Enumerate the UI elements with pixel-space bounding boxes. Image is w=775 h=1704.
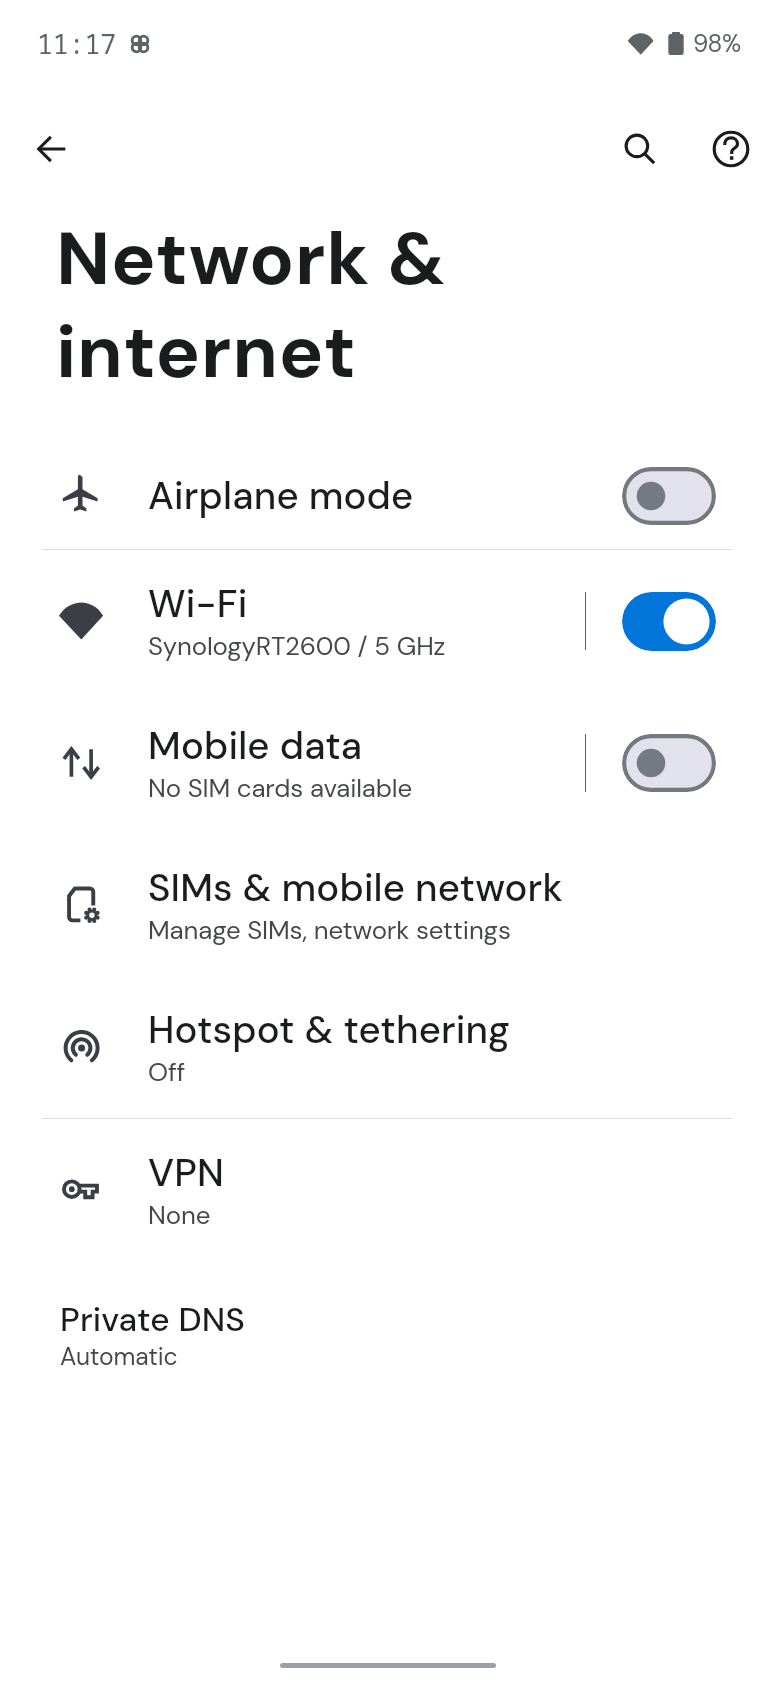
staticText: SynologyRT2600 / 5 GHz [148, 629, 446, 663]
button[interactable]: Hotspot & tethering [0, 976, 775, 1118]
button[interactable]: Search [597, 101, 683, 197]
button[interactable]: Wi-Fi [0, 550, 775, 692]
staticText: No SIM cards available [148, 771, 412, 805]
staticText: Airplane mode [148, 471, 414, 521]
staticText: Wi-Fi [148, 579, 248, 629]
staticText: Network & internet [56, 213, 447, 399]
button[interactable]: Private DNS [0, 1261, 775, 1409]
staticText: SIMs & mobile network [148, 863, 563, 913]
staticText: Off [148, 1055, 186, 1089]
button[interactable]: Help [683, 101, 775, 197]
staticText: VPN [148, 1148, 225, 1198]
staticText: None [148, 1198, 211, 1232]
staticText: Mobile data [148, 721, 363, 771]
staticText: 11:17 [37, 26, 117, 62]
staticText: Private DNS [60, 1298, 246, 1341]
staticText: Automatic [60, 1341, 178, 1373]
button[interactable]: Toggle [622, 592, 716, 651]
staticText: Hotspot & tethering [148, 1005, 511, 1055]
button[interactable]: Toggle [622, 467, 716, 525]
button[interactable]: Airplane mode [0, 443, 775, 549]
button[interactable]: Mobile data [0, 692, 775, 834]
button[interactable]: SIMs & mobile network [0, 834, 775, 976]
staticText: 98% [693, 28, 741, 60]
button[interactable]: VPN [0, 1119, 775, 1261]
staticText: Manage SIMs, network settings [148, 913, 511, 947]
button[interactable]: Back [4, 101, 100, 197]
button[interactable]: Toggle [622, 734, 716, 792]
